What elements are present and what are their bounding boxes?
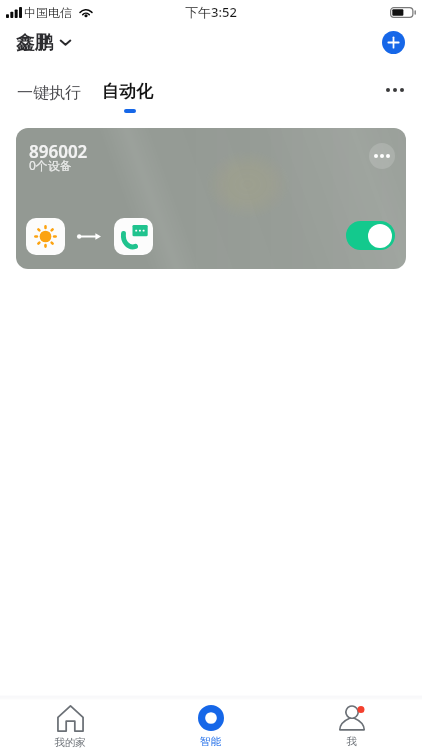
staticText: 鑫鹏 <box>16 31 53 54</box>
staticText: 我的家 <box>54 736 86 749</box>
button[interactable]: More options <box>379 78 411 102</box>
button[interactable]: 鑫鹏 <box>16 31 71 54</box>
button[interactable]: Toggle automation <box>346 221 395 250</box>
button[interactable]: 我的家 <box>0 700 140 749</box>
staticText: 0个设备 <box>29 157 72 173</box>
staticText: 中国电信 <box>24 5 72 20</box>
staticText: 下午3:52 <box>185 3 237 21</box>
button[interactable] <box>114 218 153 255</box>
button[interactable]: 我 <box>281 700 422 748</box>
button[interactable]: 一键执行 <box>17 83 81 103</box>
button[interactable]: 自动化 <box>102 60 153 113</box>
staticText: 我 <box>346 735 357 748</box>
staticText: 自动化 <box>102 81 153 102</box>
staticText: 896002 <box>29 140 88 163</box>
button[interactable]: 896002 <box>16 128 406 269</box>
button[interactable]: Scene options <box>369 143 395 169</box>
staticText: 一键执行 <box>17 83 81 103</box>
staticText: 智能 <box>200 735 221 748</box>
button[interactable]: 智能 <box>140 700 281 748</box>
button[interactable] <box>26 218 65 255</box>
button[interactable]: Add <box>382 31 405 54</box>
